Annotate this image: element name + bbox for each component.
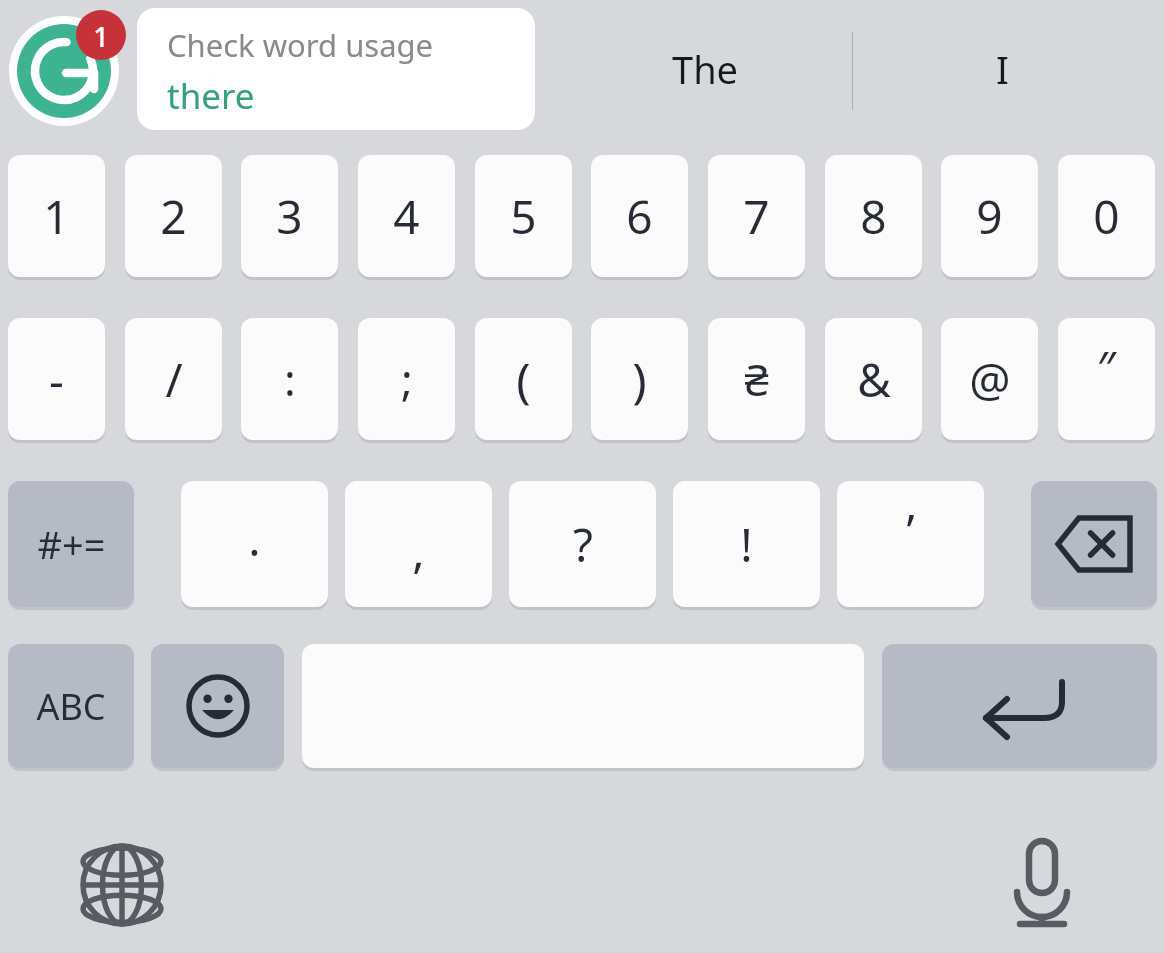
button[interactable]: 3 [241, 155, 338, 277]
button[interactable]: ! [673, 481, 820, 607]
button[interactable]: Backspace [1031, 481, 1157, 607]
button[interactable]: ( [475, 318, 572, 440]
staticText: 8 [860, 185, 887, 248]
button[interactable]: @ [941, 318, 1038, 440]
button[interactable]: 1 [8, 155, 105, 277]
button[interactable]: I [856, 8, 1148, 130]
staticText: . [248, 507, 261, 570]
button[interactable]: Enter [882, 644, 1157, 768]
button[interactable]: 8 [825, 155, 922, 277]
button[interactable]: ABC [8, 644, 134, 768]
button[interactable]: ? [509, 481, 656, 607]
staticText: - [49, 348, 64, 411]
button[interactable]: : [241, 318, 338, 440]
staticText: 5 [510, 185, 537, 248]
button[interactable]: - [8, 318, 105, 440]
button[interactable]: 0 [1058, 155, 1155, 277]
button[interactable]: Emoji [151, 644, 284, 768]
button[interactable]: 7 [708, 155, 805, 277]
staticText: ! [740, 513, 753, 576]
button[interactable]: Switch language [62, 825, 182, 945]
staticText: 7 [743, 185, 770, 248]
button[interactable]: 6 [591, 155, 688, 277]
button[interactable]: ″ [1058, 318, 1155, 440]
staticText: ; [401, 349, 413, 409]
staticText: 3 [276, 185, 303, 248]
staticText: Check word usage [167, 24, 434, 66]
staticText: @ [969, 348, 1011, 411]
staticText: ) [632, 347, 647, 412]
staticText: ? [573, 513, 593, 576]
button[interactable]: ₴ [708, 318, 805, 440]
button[interactable]: Check word usage [137, 8, 535, 130]
button[interactable]: Grammarly, 1 suggestion [5, 8, 121, 130]
button[interactable]: #+= [8, 481, 134, 607]
button[interactable]: Voice input [982, 822, 1102, 948]
button[interactable]: 4 [358, 155, 455, 277]
button[interactable]: ) [591, 318, 688, 440]
staticText: I [996, 43, 1009, 95]
staticText: , [412, 519, 425, 582]
staticText: ABC [36, 682, 106, 731]
staticText: 6 [626, 185, 653, 248]
button[interactable]: 5 [475, 155, 572, 277]
staticText: 1 [93, 18, 109, 55]
button[interactable]: . [181, 481, 328, 607]
staticText: 9 [976, 185, 1003, 248]
staticText: ( [516, 347, 531, 412]
staticText: The [672, 43, 739, 95]
button[interactable]: 9 [941, 155, 1038, 277]
staticText: : [284, 349, 296, 409]
staticText: 2 [160, 185, 187, 248]
staticText: #+= [37, 518, 106, 570]
button[interactable]: ; [358, 318, 455, 440]
button[interactable]: & [825, 318, 922, 440]
staticText: / [165, 348, 183, 411]
staticText: there [167, 72, 255, 120]
staticText: 0 [1093, 185, 1120, 248]
button[interactable]: ’ [837, 481, 984, 607]
staticText: ’ [906, 499, 915, 562]
staticText: 4 [393, 185, 420, 248]
staticText: & [857, 348, 891, 411]
staticText: ₴ [744, 349, 769, 409]
staticText: ″ [1097, 336, 1116, 399]
button[interactable]: 2 [125, 155, 222, 277]
button[interactable]: / [125, 318, 222, 440]
staticText: 1 [43, 185, 70, 248]
button[interactable]: The [560, 8, 850, 130]
button[interactable]: , [345, 481, 492, 607]
